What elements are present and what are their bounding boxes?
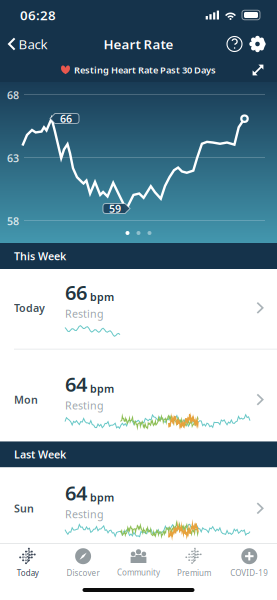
button[interactable]: Sun: [0, 467, 277, 552]
button[interactable]: Today: [0, 544, 55, 580]
staticText: Mon: [14, 392, 38, 407]
staticText: 66: [60, 111, 72, 126]
button[interactable]: COVID-19: [222, 544, 277, 580]
staticText: Premium: [177, 568, 211, 578]
staticText: 58: [7, 214, 19, 228]
staticText: bpm: [90, 382, 114, 396]
staticText: bpm: [90, 490, 114, 504]
staticText: Heart Rate: [103, 35, 173, 53]
staticText: Resting: [65, 307, 104, 321]
staticText: Discover: [67, 568, 100, 578]
staticText: 63: [7, 151, 19, 165]
button[interactable]: Sat: [0, 553, 277, 600]
staticText: Resting: [65, 398, 104, 412]
staticText: Community: [117, 567, 160, 578]
staticText: bpm: [90, 290, 114, 304]
button[interactable]: Mon: [0, 350, 277, 441]
staticText: 59: [109, 201, 121, 216]
button[interactable]: Today: [0, 269, 277, 349]
staticText: 64: [65, 371, 87, 397]
button[interactable]: Discover: [55, 544, 111, 580]
staticText: bpm: [90, 576, 114, 590]
staticText: 64: [65, 479, 87, 506]
staticText: Sun: [14, 501, 34, 515]
staticText: 66: [65, 279, 87, 306]
staticText: Back: [18, 35, 47, 53]
staticText: Resting Heart Rate Past 30 Days: [74, 64, 216, 76]
staticText: Today: [14, 301, 45, 315]
staticText: Last Week: [14, 447, 66, 462]
staticText: Today: [17, 568, 39, 578]
button[interactable]: Community: [111, 544, 166, 580]
staticText: COVID-19: [230, 568, 268, 578]
staticText: 64: [65, 565, 87, 592]
button[interactable]: Settings: [246, 32, 269, 55]
staticText: 06:28: [20, 6, 56, 24]
button[interactable]: Help: [223, 32, 246, 55]
button[interactable]: Back: [0, 32, 47, 56]
button[interactable]: Premium: [166, 544, 222, 580]
staticText: 68: [7, 88, 19, 102]
staticText: This Week: [14, 249, 66, 263]
button[interactable]: Expand chart: [251, 63, 265, 77]
staticText: Resting: [65, 507, 104, 521]
